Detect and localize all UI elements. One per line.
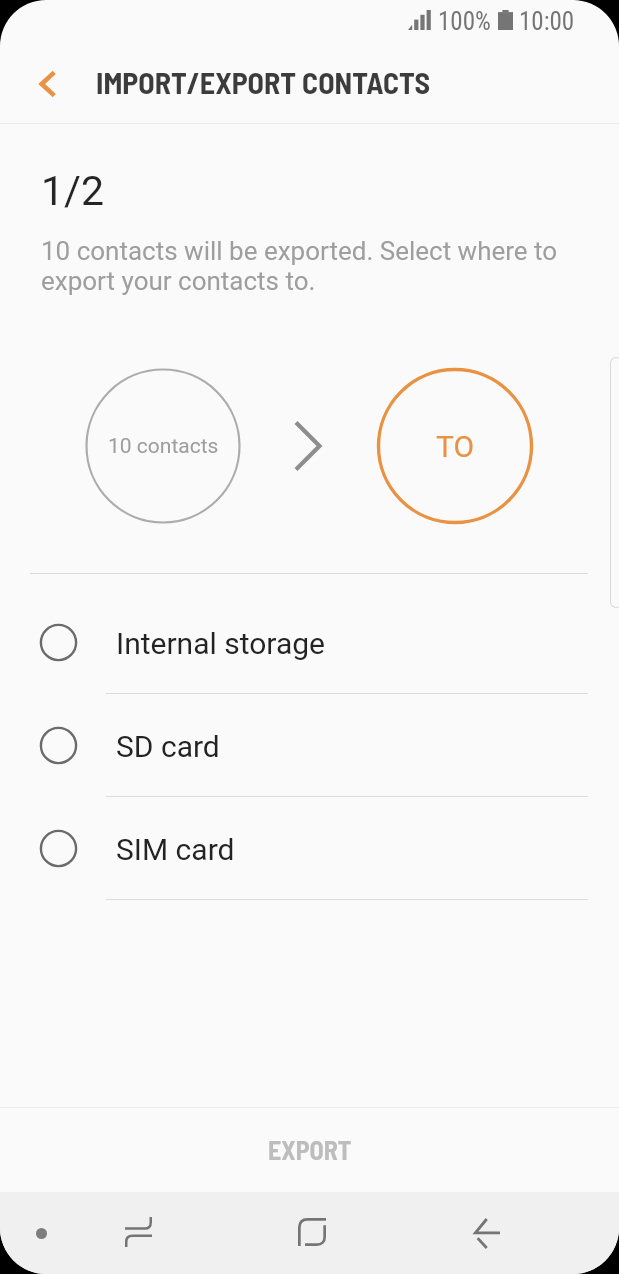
button[interactable]: Back — [445, 1191, 529, 1274]
staticText: 10:00 — [519, 7, 575, 36]
button[interactable]: Navigate up — [12, 44, 82, 123]
staticText: TO — [436, 429, 475, 464]
staticText: SIM card — [116, 832, 235, 867]
button[interactable]: Home — [270, 1190, 354, 1274]
button[interactable]: EXPORT — [0, 1108, 619, 1192]
staticText: 10 contacts will be exported. Select whe… — [41, 236, 571, 296]
staticText: IMPORT/EXPORT CONTACTS — [96, 64, 431, 100]
staticText: 1/2 — [41, 167, 105, 215]
button[interactable]: Menu — [13, 1205, 69, 1261]
staticText: SD card — [116, 729, 220, 764]
button[interactable]: Recent apps — [96, 1190, 180, 1274]
staticText: 100% — [438, 7, 491, 36]
staticText: EXPORT — [268, 1134, 352, 1165]
button[interactable]: SD card — [0, 694, 619, 797]
staticText: Internal storage — [116, 626, 326, 661]
button[interactable]: Internal storage — [0, 591, 619, 694]
button[interactable]: SIM card — [0, 797, 619, 900]
staticText: 10 contacts — [108, 434, 219, 459]
